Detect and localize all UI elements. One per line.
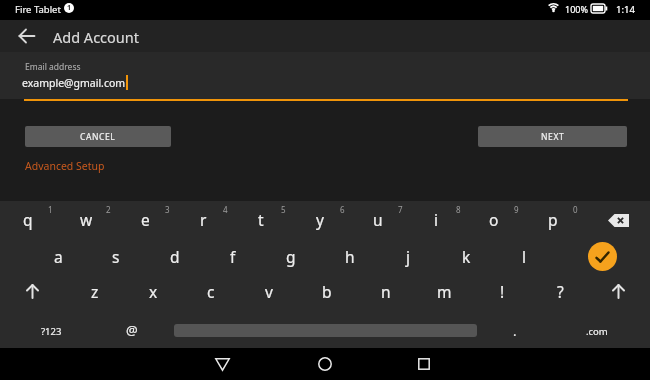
button[interactable] xyxy=(406,348,442,380)
staticText: e xyxy=(141,209,150,230)
button[interactable] xyxy=(588,242,617,271)
staticText: 3 xyxy=(165,204,170,215)
staticText: example@gmail.com xyxy=(22,76,126,90)
staticText: w xyxy=(80,209,93,230)
button[interactable] xyxy=(12,20,42,52)
button[interactable]: g xyxy=(267,239,315,273)
button[interactable]: l xyxy=(500,239,548,273)
button[interactable] xyxy=(204,348,240,380)
button[interactable]: CANCEL xyxy=(25,126,171,147)
staticText: 4 xyxy=(223,204,228,215)
staticText: b xyxy=(322,281,332,302)
staticText: 6 xyxy=(340,204,345,215)
staticText: 0 xyxy=(573,204,578,215)
button[interactable]: i xyxy=(412,202,460,236)
button[interactable]: w xyxy=(62,202,110,236)
staticText: CANCEL xyxy=(80,131,116,143)
button[interactable]: ? xyxy=(536,274,584,308)
staticText: i xyxy=(434,209,438,230)
button[interactable] xyxy=(601,274,635,308)
staticText: d xyxy=(170,246,180,267)
button[interactable]: h xyxy=(326,239,374,273)
button[interactable]: m xyxy=(420,274,468,308)
button[interactable] xyxy=(307,348,343,380)
staticText: c xyxy=(207,281,215,302)
staticText: Advanced Setup xyxy=(25,159,105,173)
staticText: Email address xyxy=(25,61,81,73)
staticText: 7 xyxy=(398,204,403,215)
staticText: 8 xyxy=(456,204,461,215)
button[interactable]: r xyxy=(179,202,227,236)
staticText: .com xyxy=(586,325,608,338)
staticText: 1:14 xyxy=(616,3,635,16)
button[interactable]: x xyxy=(129,274,177,308)
staticText: g xyxy=(286,246,296,267)
staticText: 9 xyxy=(514,204,519,215)
staticText: NEXT xyxy=(541,131,565,143)
staticText: s xyxy=(112,246,120,267)
staticText: 5 xyxy=(281,204,286,215)
button[interactable]: z xyxy=(71,274,119,308)
button[interactable]: f xyxy=(209,239,257,273)
staticText: h xyxy=(345,246,355,267)
button[interactable]: c xyxy=(187,274,235,308)
staticText: u xyxy=(373,209,383,230)
staticText: Fire Tablet xyxy=(15,3,61,16)
staticText: . xyxy=(513,322,517,340)
button[interactable]: p xyxy=(529,202,577,236)
staticText: Add Account xyxy=(53,27,139,47)
staticText: a xyxy=(54,246,63,267)
button[interactable]: ?123 xyxy=(27,314,75,348)
staticText: @ xyxy=(126,321,138,339)
staticText: t xyxy=(258,209,264,230)
staticText: o xyxy=(489,209,499,230)
staticText: f xyxy=(230,246,236,267)
staticText: v xyxy=(265,281,273,302)
staticText: k xyxy=(462,246,471,267)
button[interactable] xyxy=(15,274,49,308)
staticText: j xyxy=(406,246,410,267)
button[interactable] xyxy=(601,208,635,232)
button[interactable]: s xyxy=(92,239,140,273)
staticText: ! xyxy=(500,281,505,302)
button[interactable]: t xyxy=(237,202,285,236)
button[interactable]: e xyxy=(121,202,169,236)
staticText: m xyxy=(437,281,452,302)
button[interactable]: j xyxy=(384,239,432,273)
button[interactable]: ! xyxy=(478,274,526,308)
staticText: 100% xyxy=(565,3,588,15)
staticText: 1 xyxy=(48,204,53,215)
staticText: r xyxy=(200,209,207,230)
staticText: ? xyxy=(557,281,564,302)
button[interactable]: NEXT xyxy=(478,126,627,147)
button[interactable]: y xyxy=(296,202,344,236)
staticText: 1 xyxy=(67,3,72,13)
button[interactable]: q xyxy=(4,202,52,236)
staticText: ?123 xyxy=(41,325,62,338)
button[interactable]: b xyxy=(303,274,351,308)
button[interactable]: o xyxy=(470,202,518,236)
staticText: y xyxy=(316,209,324,230)
staticText: n xyxy=(381,281,391,302)
button[interactable]: v xyxy=(245,274,293,308)
button[interactable]: u xyxy=(354,202,402,236)
staticText: z xyxy=(91,281,99,302)
staticText: q xyxy=(23,209,33,230)
button[interactable]: .com xyxy=(573,314,621,348)
button[interactable]: @ xyxy=(108,313,156,347)
button[interactable]: Advanced Setup xyxy=(25,159,105,173)
button[interactable]: d xyxy=(151,239,199,273)
button[interactable]: k xyxy=(442,239,490,273)
staticText: l xyxy=(522,246,526,267)
button[interactable]: . xyxy=(491,314,539,348)
staticText: 2 xyxy=(106,204,111,215)
button[interactable]: a xyxy=(34,239,82,273)
staticText: p xyxy=(548,209,558,230)
button[interactable]: n xyxy=(362,274,410,308)
staticText: x xyxy=(149,281,158,302)
